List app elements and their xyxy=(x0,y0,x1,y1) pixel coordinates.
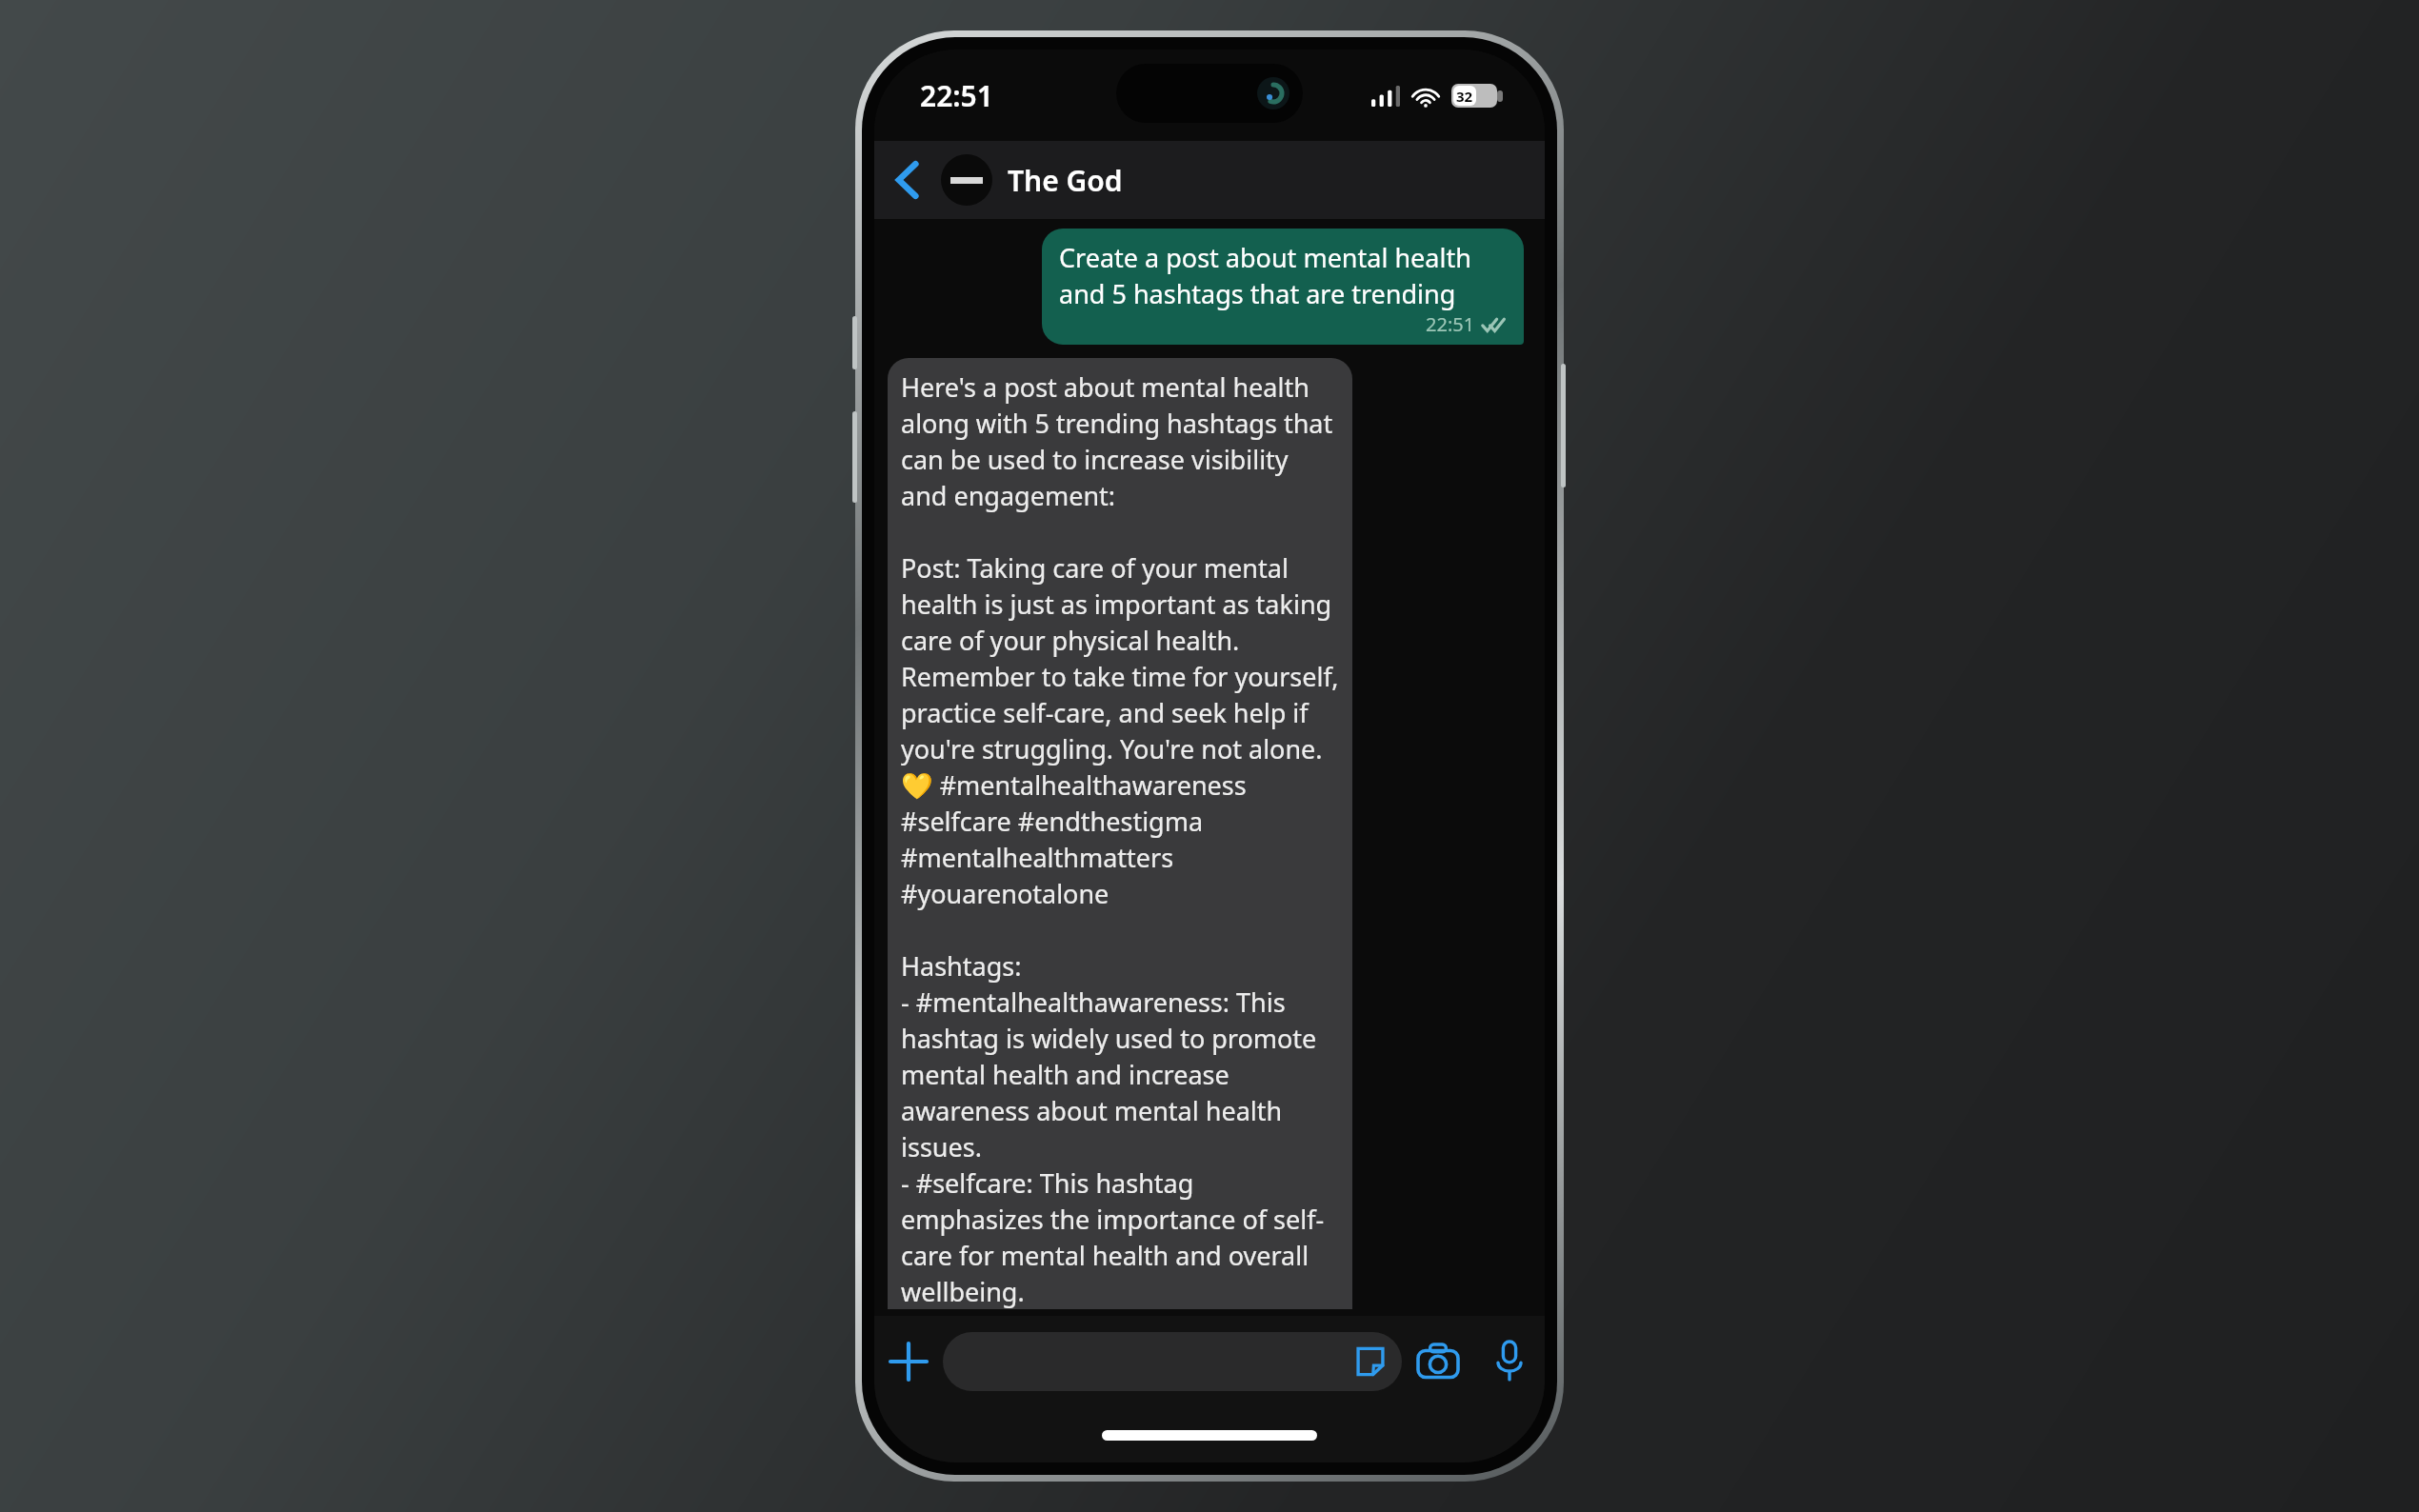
button[interactable]: Back xyxy=(874,141,941,219)
staticText: Create a post about mental health and 5 … xyxy=(1059,240,1507,311)
staticText: 22:51 xyxy=(1426,311,1475,337)
button[interactable]: Voice message xyxy=(1474,1316,1545,1407)
button[interactable]: Camera xyxy=(1402,1316,1474,1407)
staticText: The God xyxy=(1008,161,1123,200)
staticText: Here's a post about mental health along … xyxy=(901,369,1339,1309)
staticText: 22:51 xyxy=(920,76,993,115)
button[interactable]: Attach xyxy=(874,1316,943,1407)
button[interactable]: The God xyxy=(941,141,1545,219)
staticText: 32 xyxy=(1456,87,1473,106)
button[interactable]: Create a post about mental health and 5 … xyxy=(1042,229,1524,345)
button[interactable]: Here's a post about mental health along … xyxy=(888,358,1352,1309)
button[interactable]: Message xyxy=(943,1332,1402,1391)
